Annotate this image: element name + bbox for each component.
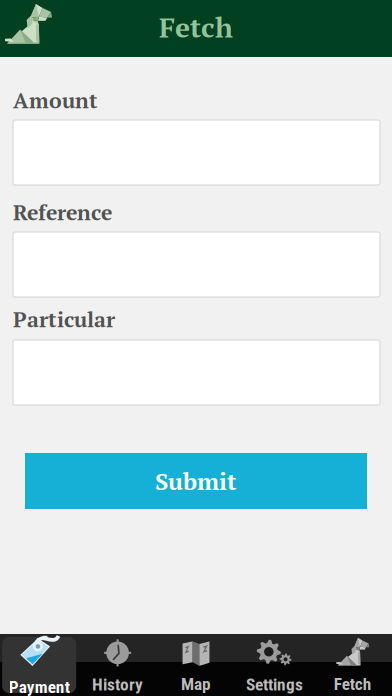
staticText: Fetch: [159, 8, 233, 46]
staticText: History: [92, 674, 143, 695]
button[interactable]: Payment: [0, 634, 78, 696]
button[interactable]: Settings: [235, 634, 314, 696]
button[interactable]: Fetch: [314, 634, 392, 696]
button[interactable]: Map: [157, 634, 235, 696]
staticText: Reference: [13, 198, 112, 226]
staticText: Amount: [13, 86, 98, 114]
button[interactable]: History: [78, 634, 157, 696]
button[interactable]: Submit: [25, 453, 367, 509]
staticText: Payment: [9, 677, 70, 696]
staticText: Settings: [246, 674, 303, 695]
staticText: Fetch: [334, 674, 372, 694]
staticText: Map: [181, 674, 211, 694]
staticText: Particular: [13, 305, 115, 333]
staticText: Submit: [155, 465, 237, 497]
